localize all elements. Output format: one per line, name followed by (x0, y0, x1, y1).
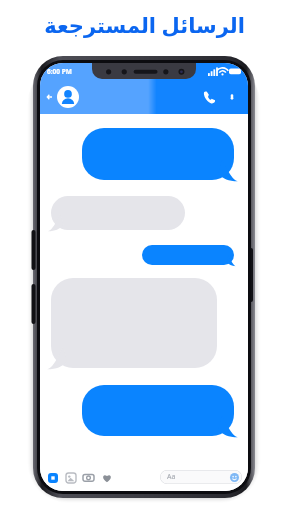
button[interactable]: Received message (51, 278, 217, 368)
button[interactable]: Contact profile (57, 86, 79, 108)
button[interactable]: Like (100, 471, 113, 484)
button[interactable]: Call (198, 86, 220, 108)
button[interactable]: More options (222, 87, 242, 107)
button[interactable]: Received message (51, 196, 185, 230)
button[interactable]: Sent message (82, 128, 234, 180)
button[interactable]: Camera (82, 471, 95, 484)
staticText: Aa (167, 472, 176, 482)
staticText: الرسائل المسترجعة (44, 11, 245, 40)
button[interactable]: Sent message (142, 245, 234, 265)
button[interactable]: Sent message (82, 385, 234, 436)
button[interactable]: Back (43, 90, 57, 104)
button[interactable]: Gallery (64, 471, 77, 484)
button[interactable]: Aa (160, 470, 242, 484)
button[interactable]: More actions (46, 471, 59, 484)
staticText: 6:00 PM (47, 67, 72, 76)
